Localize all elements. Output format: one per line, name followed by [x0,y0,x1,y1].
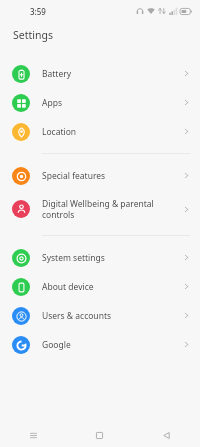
staticText: Special features [42,170,183,182]
staticText: Users & accounts [42,310,183,322]
button[interactable]: Location [0,117,200,146]
button[interactable]: Back [133,423,200,447]
staticText: Settings [13,28,53,42]
button[interactable]: System settings [0,243,200,272]
staticText: System settings [42,252,183,264]
button[interactable]: Special features [0,161,200,190]
staticText: About device [42,281,183,293]
button[interactable]: Recents [0,423,66,447]
staticText: Digital Wellbeing & parental controls [42,198,183,220]
staticText: Apps [42,97,183,109]
staticText: Google [42,339,183,351]
button[interactable]: Battery [0,59,200,88]
staticText: Battery [42,68,183,80]
button[interactable]: About device [0,272,200,301]
staticText: Location [42,126,183,138]
button[interactable]: Google [0,330,200,359]
button[interactable]: Home [66,423,133,447]
staticText: 3:59 [30,6,46,17]
button[interactable]: Apps [0,88,200,117]
button[interactable]: Digital Wellbeing & parental controls [0,190,200,228]
button[interactable]: Users & accounts [0,301,200,330]
